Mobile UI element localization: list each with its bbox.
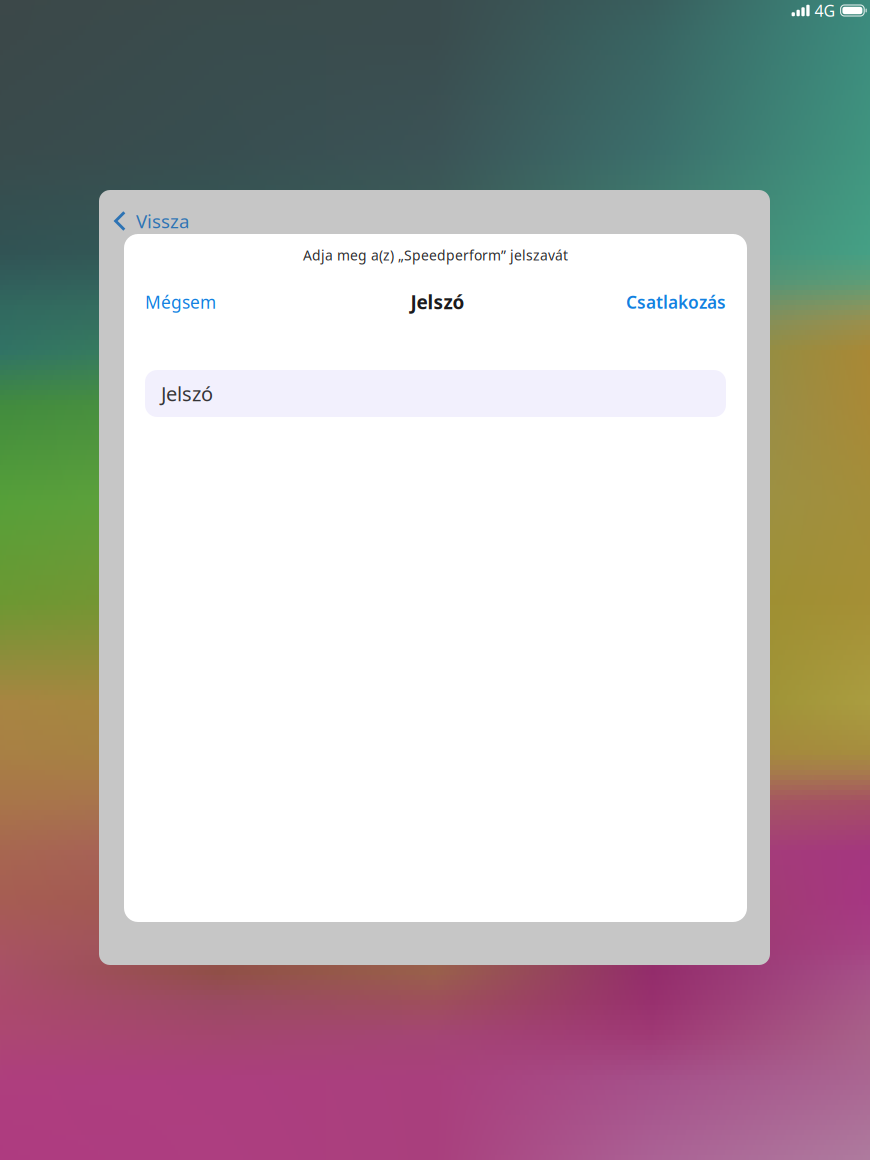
staticText: Adja meg a(z) „Speedperform” jelszavát: [303, 246, 568, 264]
staticText: Mégsem: [145, 290, 216, 314]
button[interactable]: Mégsem: [145, 285, 285, 319]
button[interactable]: Csatlakozás: [576, 285, 726, 319]
button[interactable]: Jelszó: [145, 370, 726, 417]
staticText: Jelszó: [410, 289, 464, 315]
staticText: 4G: [815, 0, 836, 21]
staticText: Csatlakozás: [626, 290, 726, 314]
button[interactable]: Vissza: [99, 199, 299, 243]
staticText: Jelszó: [161, 380, 213, 407]
staticText: Vissza: [136, 208, 189, 234]
